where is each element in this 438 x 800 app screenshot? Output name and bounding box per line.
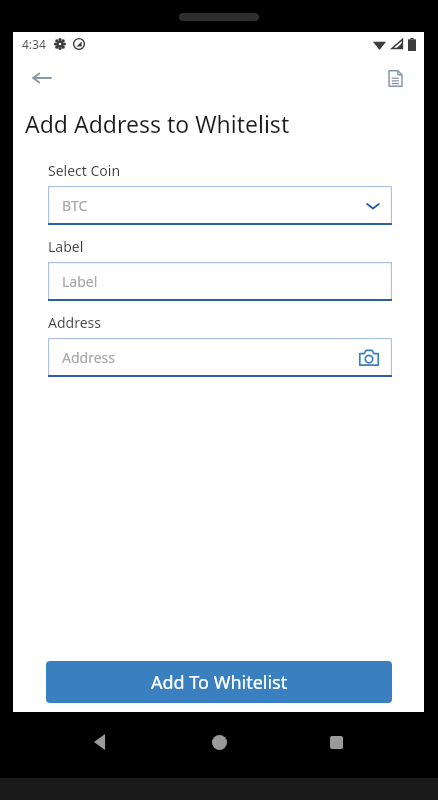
button[interactable]: Add To Whitelist [46, 661, 392, 703]
staticText: Select Coin [48, 161, 121, 180]
button[interactable]: BTC [48, 186, 392, 225]
button[interactable]: Label [48, 262, 392, 301]
button[interactable]: Navigate up [23, 59, 61, 97]
button[interactable]: Home [205, 728, 233, 756]
button[interactable]: Address book [376, 59, 414, 97]
staticText: Add Address to Whitelist [25, 108, 290, 139]
staticText: BTC [62, 196, 366, 215]
staticText: 4:34 [22, 36, 46, 52]
staticText: Address [62, 348, 358, 367]
button[interactable]: Back [86, 728, 114, 756]
button[interactable]: Recent apps [322, 728, 350, 756]
button[interactable]: Address [48, 338, 392, 377]
staticText: Address [48, 313, 101, 332]
staticText: Add To Whitelist [151, 670, 288, 695]
staticText: Label [62, 272, 380, 291]
staticText: Label [48, 237, 84, 256]
